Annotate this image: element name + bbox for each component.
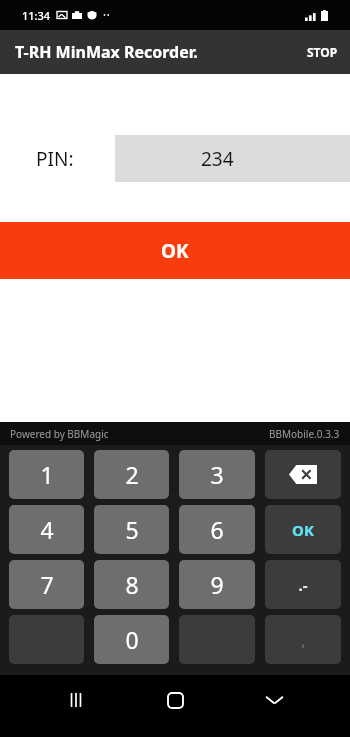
button[interactable]: Home	[152, 677, 198, 723]
staticText: ,	[301, 630, 306, 650]
staticText: 4	[40, 514, 54, 545]
staticText: OK	[161, 238, 189, 264]
staticText: Powered by BBMagic	[10, 427, 109, 441]
button[interactable]: OK	[265, 505, 341, 554]
staticText: 6	[210, 514, 224, 545]
staticText: PIN:	[36, 146, 74, 172]
staticText: .-	[298, 575, 308, 595]
button[interactable]: 9	[179, 560, 255, 609]
button[interactable]: 6	[179, 505, 255, 554]
staticText: 1	[40, 459, 54, 490]
staticText: 5	[125, 514, 139, 545]
staticText: 7	[40, 569, 54, 600]
staticText: 2	[125, 459, 139, 490]
button[interactable]: OK	[0, 222, 350, 279]
button[interactable]: 7	[9, 560, 84, 609]
staticText: BBMobile.0.3.3	[269, 427, 340, 441]
staticText: 234	[201, 146, 234, 172]
staticText: 11:34	[22, 8, 51, 23]
staticText: 0	[125, 624, 139, 655]
button[interactable]: Back	[251, 677, 297, 723]
button[interactable]: 1	[9, 450, 84, 499]
staticText: 3	[210, 459, 224, 490]
staticText: STOP	[307, 44, 338, 60]
button[interactable]: 5	[94, 505, 169, 554]
button[interactable]: .-	[265, 560, 341, 609]
staticText: T-RH MinMax Recorder.	[15, 41, 198, 63]
button[interactable]: 4	[9, 505, 84, 554]
button[interactable]: 0	[94, 615, 169, 664]
staticText: OK	[292, 520, 314, 540]
button[interactable]: STOP	[295, 34, 350, 70]
button[interactable]: 234	[115, 135, 350, 182]
staticText: 9	[210, 569, 224, 600]
staticText: 8	[125, 569, 139, 600]
button[interactable]: 2	[94, 450, 169, 499]
button[interactable]: 8	[94, 560, 169, 609]
button[interactable]: Recents	[53, 677, 99, 723]
button[interactable]: 3	[179, 450, 255, 499]
button[interactable]: Backspace	[265, 450, 341, 499]
